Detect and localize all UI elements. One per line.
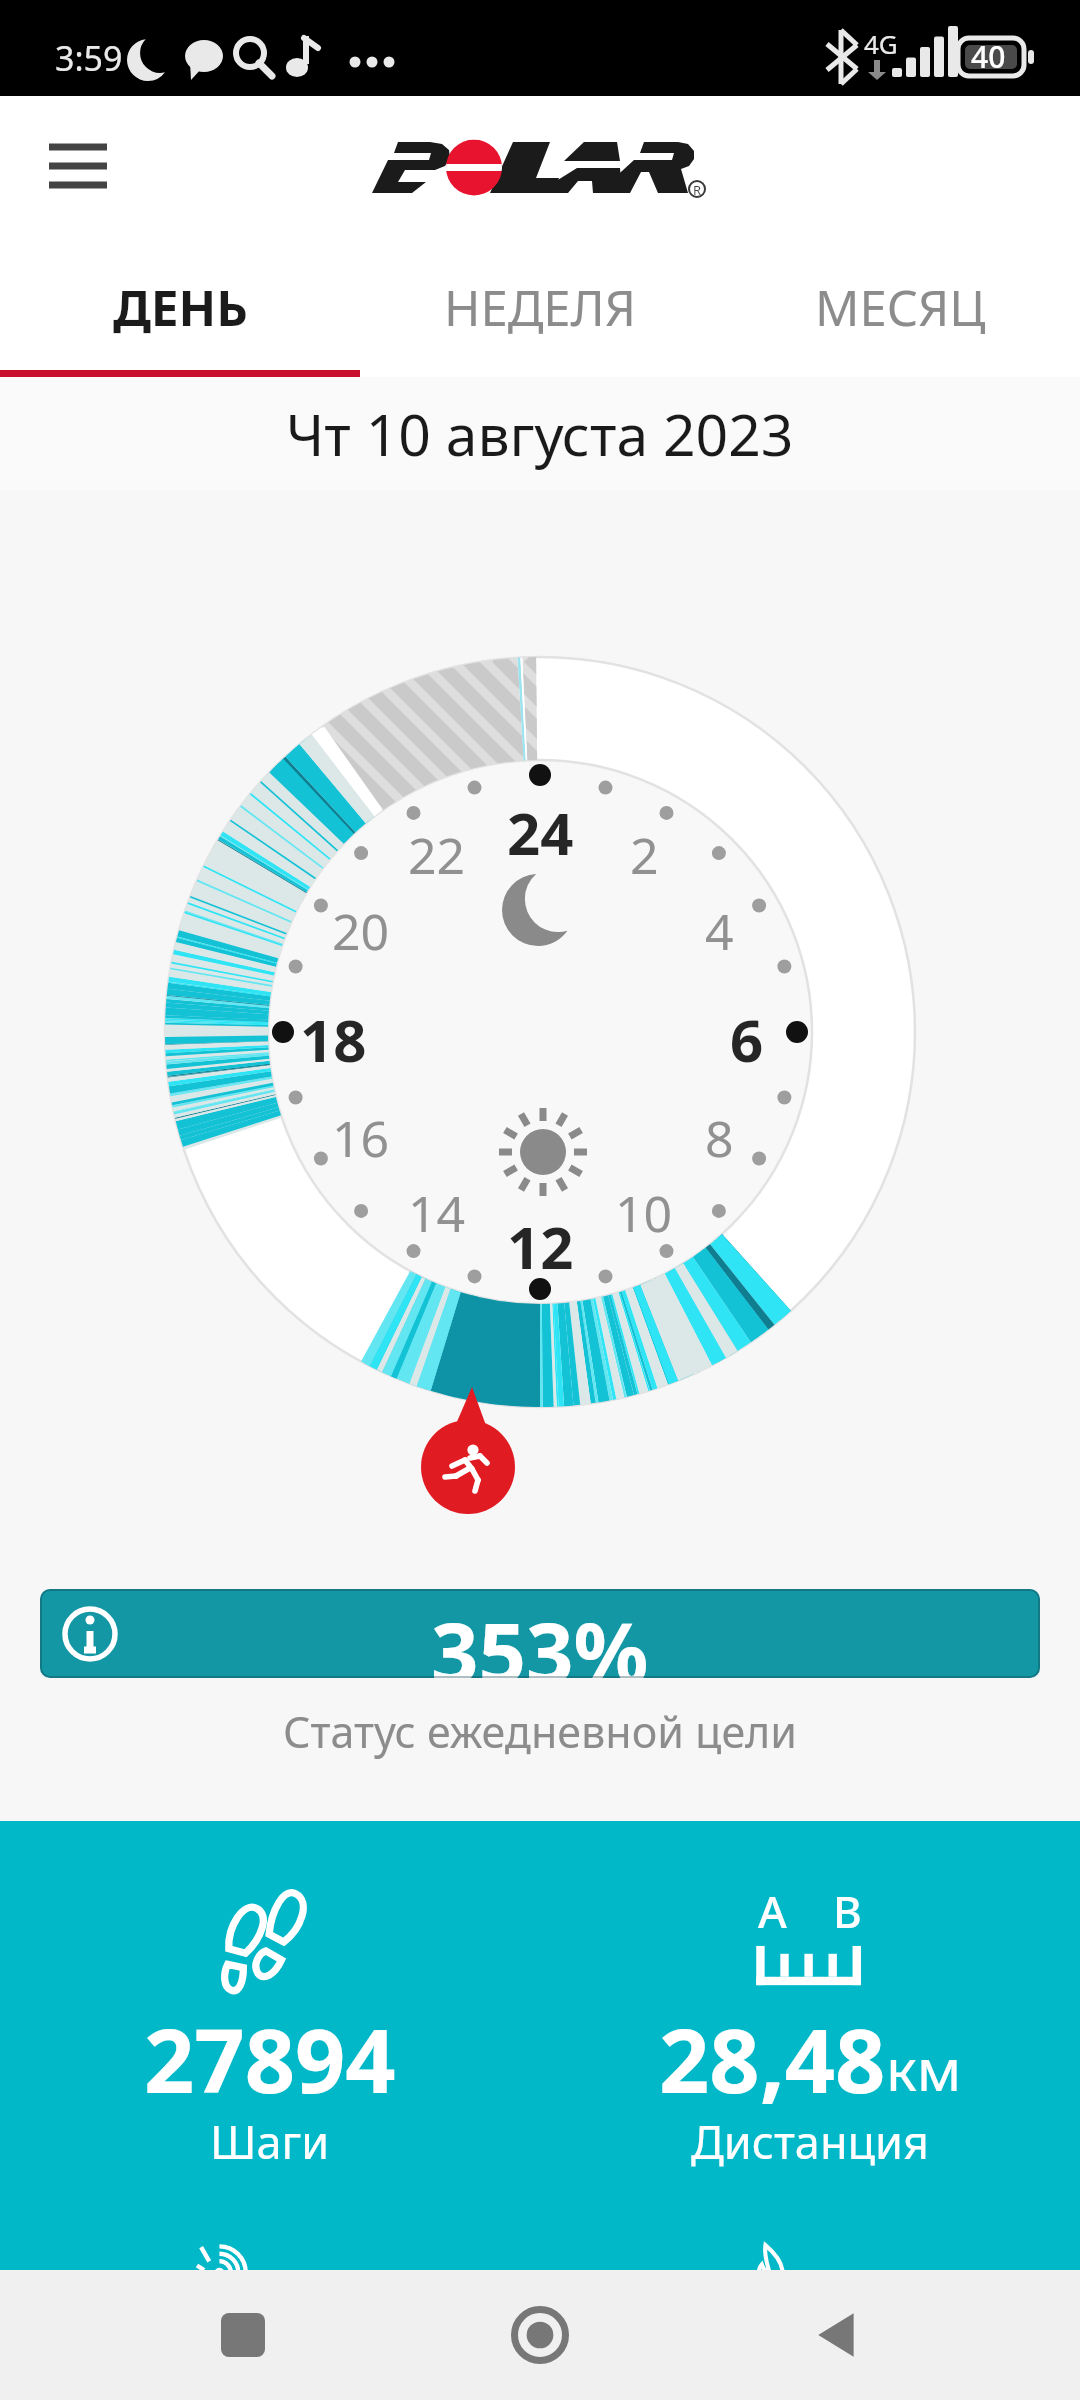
staticText: 40 [971,36,1006,77]
button[interactable] [0,2219,540,2270]
staticText: 14 [408,1179,466,1243]
button[interactable]: Home [485,2280,595,2390]
staticText: 4G [864,26,898,61]
staticText: 24 [507,793,574,857]
staticText: 2 [630,821,659,885]
staticText: НЕДЕЛЯ [444,274,637,341]
staticText: МЕСЯЦ [815,274,986,341]
button[interactable]: A [540,1881,1080,2219]
button[interactable]: Чт 10 августа 2023 [0,377,1080,490]
staticText: A [758,1881,787,1941]
staticText: 28,48 [659,1999,886,2119]
staticText: км [886,2029,962,2108]
staticText: 353% [431,1594,649,1678]
button[interactable]: ДЕНЬ [0,244,360,370]
staticText: 22 [408,821,466,885]
staticText: R [693,181,702,199]
button[interactable]: Add training session [400,1390,540,1530]
button[interactable] [540,2219,1080,2270]
button[interactable]: НЕДЕЛЯ [360,244,720,370]
staticText: B [833,1881,862,1941]
staticText: 16 [332,1104,390,1168]
staticText: 10 [615,1179,673,1243]
staticText: 27894 [144,1999,396,2119]
staticText: Чт 10 августа 2023 [286,395,794,473]
button[interactable]: Menu [26,118,130,222]
button[interactable]: 27894 [0,1881,540,2219]
staticText: ДЕНЬ [113,274,248,341]
button[interactable]: Back [783,2280,893,2390]
staticText: 12 [507,1207,574,1271]
button[interactable]: 353% [40,1589,1040,1678]
button[interactable]: Recent apps [188,2280,298,2390]
staticText: Статус ежедневной цели [0,1702,1080,1761]
staticText: Дистанция [691,2111,929,2172]
staticText: 3:59 [55,35,123,81]
button[interactable]: МЕСЯЦ [720,244,1080,370]
staticText: 20 [332,897,390,961]
staticText: 4 [705,897,734,961]
staticText: 18 [300,1000,367,1064]
staticText: 6 [730,1000,764,1064]
staticText: Шаги [210,2111,330,2172]
staticText: 8 [705,1104,734,1168]
